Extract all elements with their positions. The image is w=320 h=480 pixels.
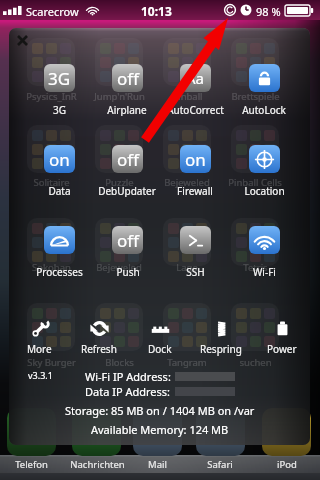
staticText: Wi-Fi IP Address: xyxy=(85,369,171,384)
button[interactable]: Power xyxy=(253,318,311,360)
staticText: Firewall xyxy=(177,184,213,197)
button[interactable]: on xyxy=(26,139,92,197)
staticText: 98 % xyxy=(256,4,281,19)
button[interactable]: Dock xyxy=(131,318,189,360)
button[interactable]: Close xyxy=(13,31,31,49)
staticText: Sky Burger xyxy=(27,356,76,369)
button[interactable]: off xyxy=(94,58,160,116)
staticText: Mail xyxy=(148,458,167,471)
staticText: Data IP Address: xyxy=(85,384,171,399)
staticText: Refresh xyxy=(81,342,117,356)
staticText: Wi-Fi xyxy=(253,265,276,278)
staticText: 10:13 xyxy=(141,3,172,19)
button[interactable] xyxy=(7,408,56,456)
button[interactable] xyxy=(196,408,245,456)
staticText: More xyxy=(27,342,52,356)
staticText: Available Memory: 124 MB xyxy=(91,422,229,437)
staticText: Location xyxy=(244,184,285,197)
staticText: Push xyxy=(116,265,140,278)
button[interactable]: Aa xyxy=(162,58,228,116)
staticText: iPod xyxy=(277,458,297,471)
button[interactable]: AutoLock xyxy=(231,58,297,116)
staticText: Dock xyxy=(148,342,172,356)
staticText: AutoCorrect xyxy=(167,103,224,116)
staticText: DebUpdater xyxy=(98,184,156,197)
staticText: Bejeweled xyxy=(96,261,142,274)
staticText: Power xyxy=(267,342,297,356)
staticText: Psysics_InR xyxy=(26,90,77,103)
staticText: Airplane xyxy=(107,103,147,116)
button[interactable]: Refresh xyxy=(70,318,128,360)
staticText: on xyxy=(185,148,206,171)
staticText: Respring xyxy=(200,342,242,356)
staticText: Pinball xyxy=(172,90,203,103)
button[interactable]: Nachrichten xyxy=(64,458,130,471)
button[interactable]: Location xyxy=(231,139,297,197)
staticText: Nachrichten xyxy=(70,458,125,471)
button[interactable]: Wi-Fi xyxy=(231,220,297,278)
staticText: Sokoban xyxy=(32,261,71,274)
staticText: off xyxy=(117,67,139,90)
button[interactable]: iPod xyxy=(254,458,320,471)
button[interactable]: Telefon xyxy=(0,458,64,471)
staticText: Pinball Cells xyxy=(228,176,282,189)
staticText: Storage: 85 MB on / 1404 MB on /var xyxy=(65,403,255,418)
staticText: suchen xyxy=(239,356,272,369)
staticText: Tetris xyxy=(243,261,268,274)
staticText: Lage xyxy=(176,261,198,274)
staticText: Processes xyxy=(36,265,83,278)
staticText: Aa xyxy=(186,68,205,88)
staticText: Scarecrow xyxy=(26,4,79,19)
button[interactable]: Mail xyxy=(124,458,190,471)
staticText: Safari xyxy=(207,458,233,471)
button[interactable]: More xyxy=(10,318,68,360)
staticText: Data xyxy=(48,184,71,197)
staticText: off xyxy=(117,229,139,252)
staticText: Brettspiele xyxy=(231,90,280,103)
staticText: v3.3.1 xyxy=(28,369,53,381)
button[interactable] xyxy=(72,408,121,456)
staticText: Telefon xyxy=(15,458,48,471)
staticText: off xyxy=(117,148,139,171)
staticText: 3G xyxy=(53,103,66,116)
button[interactable]: 3G xyxy=(26,58,92,116)
button[interactable]: Respring xyxy=(192,318,250,360)
staticText: SSH xyxy=(186,265,205,278)
staticText: Tangram xyxy=(167,356,207,369)
button[interactable]: on xyxy=(162,139,228,197)
staticText: on xyxy=(49,148,70,171)
staticText: Puzzle xyxy=(105,176,134,189)
staticText: Jump'n'Run xyxy=(94,90,145,103)
staticText: Blocks xyxy=(105,356,134,369)
staticText: AutoLock xyxy=(242,103,286,116)
button[interactable]: off xyxy=(94,220,160,278)
button[interactable]: SSH xyxy=(162,220,228,278)
button[interactable] xyxy=(133,408,182,456)
button[interactable]: off xyxy=(94,139,160,197)
button[interactable]: Safari xyxy=(187,458,253,471)
staticText: Solitaire xyxy=(33,176,70,189)
staticText: 3G xyxy=(48,67,71,90)
staticText: Bejeweled xyxy=(164,176,210,189)
button[interactable] xyxy=(262,408,311,456)
button[interactable]: Processes xyxy=(26,220,92,278)
